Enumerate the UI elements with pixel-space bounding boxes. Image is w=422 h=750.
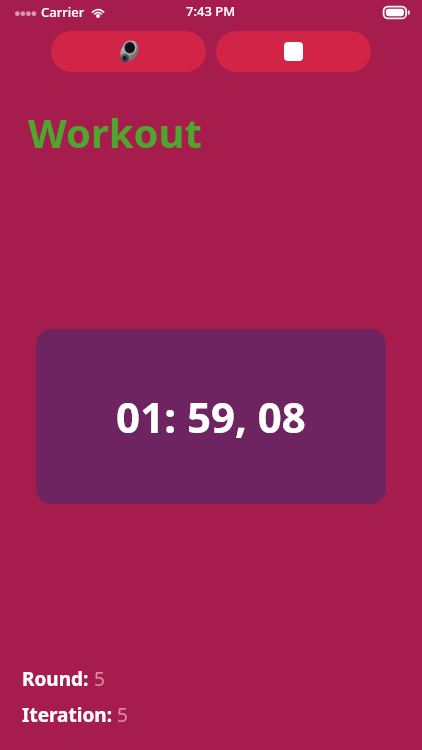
button[interactable]: Toggle sound — [51, 31, 206, 72]
staticText: Carrier — [41, 3, 85, 21]
staticText: 5 — [117, 702, 128, 728]
staticText: Iteration: — [22, 702, 117, 728]
staticText: 01: 59, 08 — [116, 388, 306, 445]
staticText: Workout — [28, 105, 202, 159]
staticText: Round: — [22, 666, 94, 692]
button[interactable]: 01: 59, 08 — [36, 329, 386, 504]
staticText: 7:43 PM — [186, 2, 236, 20]
button[interactable]: Stop — [216, 31, 371, 72]
staticText: 5 — [94, 666, 105, 692]
